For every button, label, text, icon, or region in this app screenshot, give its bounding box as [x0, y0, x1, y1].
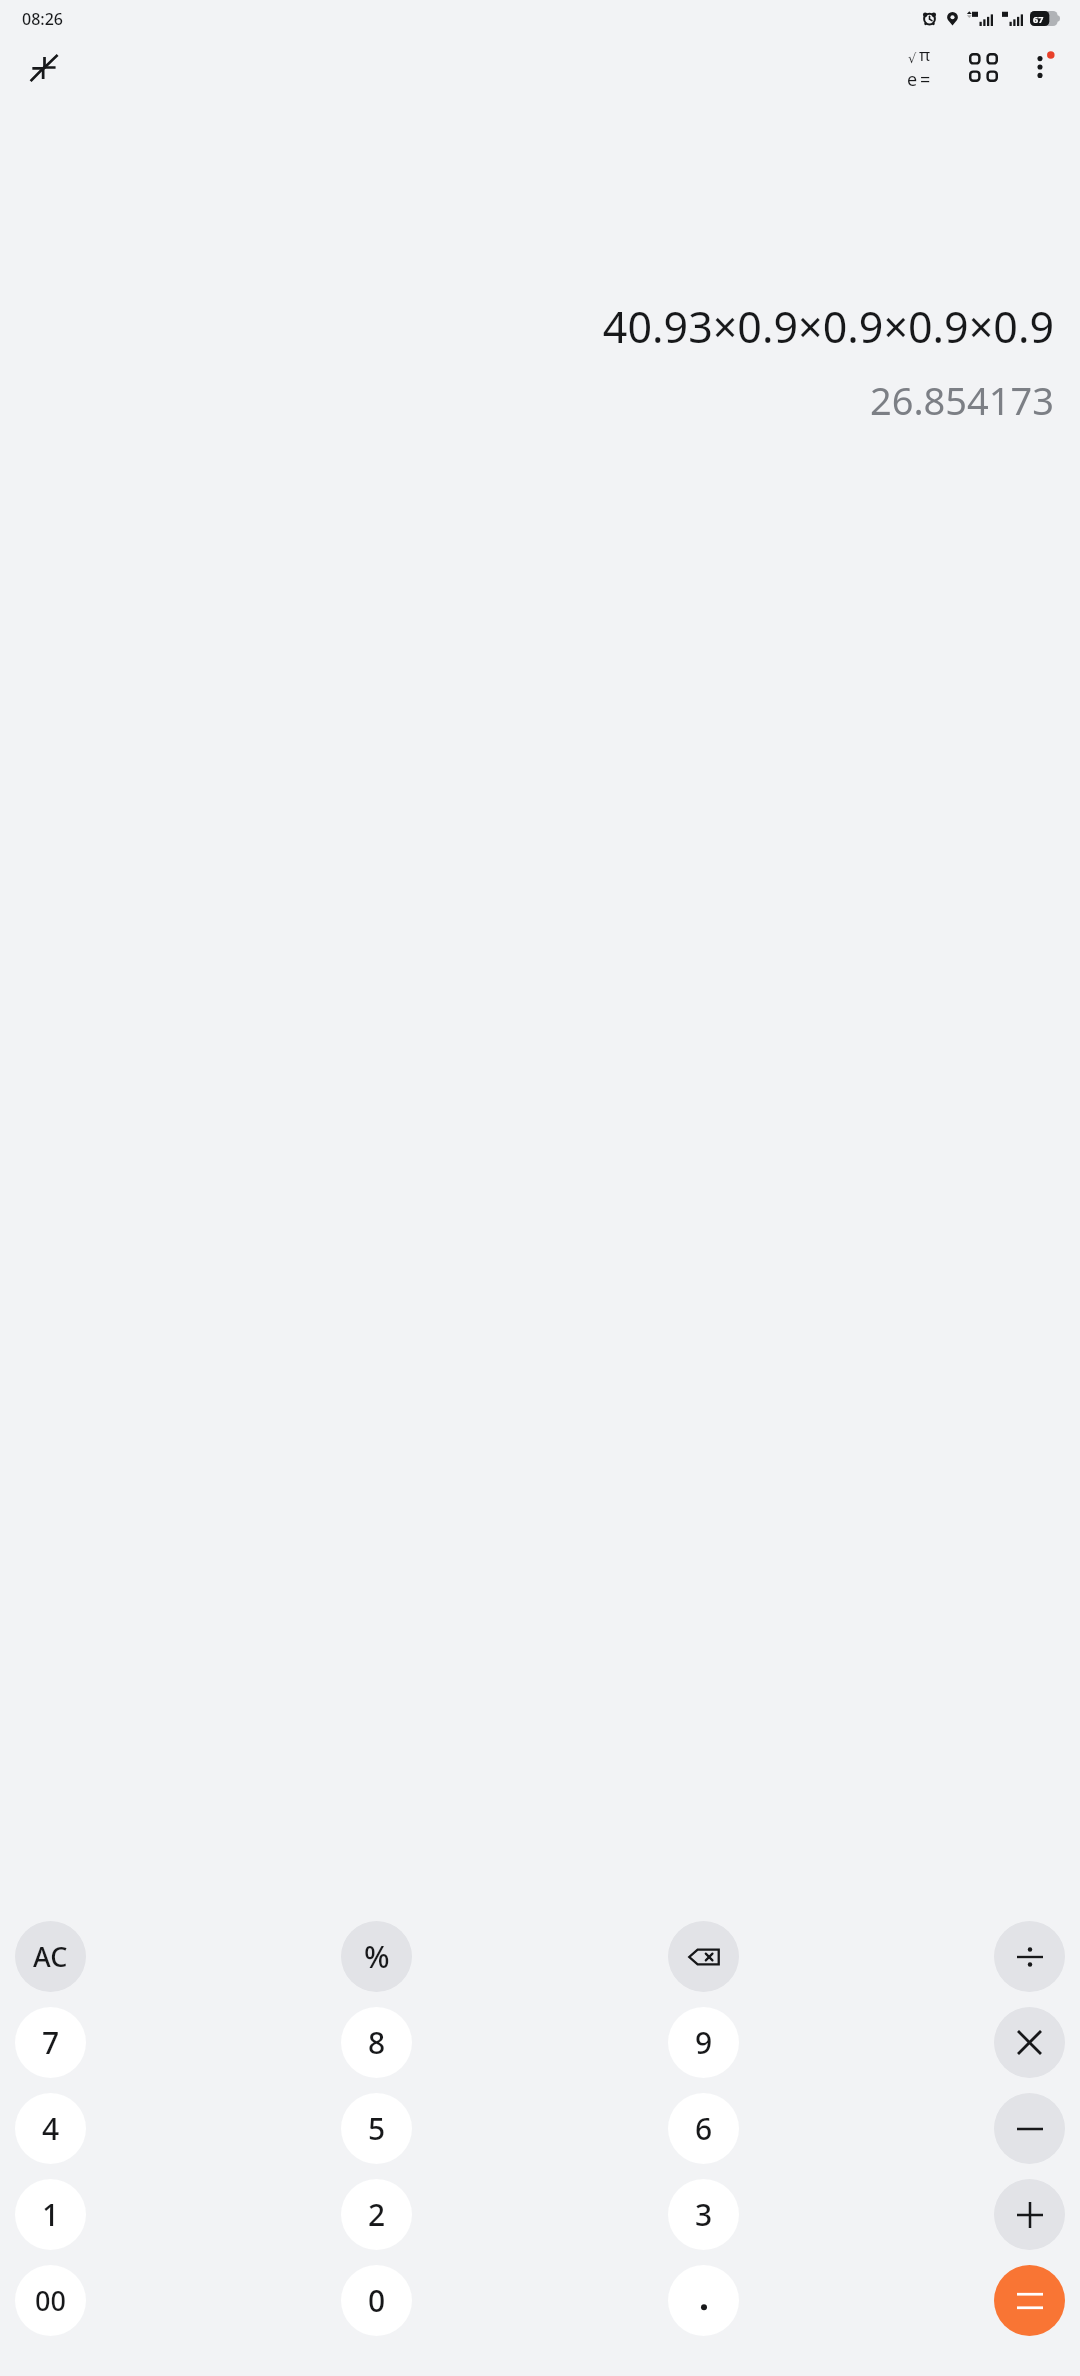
staticText: 26.854173	[869, 374, 1054, 426]
staticText: 7	[42, 2022, 60, 2063]
button[interactable]: More options	[1014, 38, 1072, 96]
button[interactable]: Scientific mode	[890, 38, 948, 96]
staticText: =	[920, 67, 931, 92]
button[interactable]: Add	[994, 2179, 1065, 2250]
button[interactable]: AC	[15, 1921, 86, 1992]
button[interactable]: 1	[15, 2179, 86, 2250]
staticText: AC	[33, 1938, 68, 1975]
button[interactable]: 5	[341, 2093, 412, 2164]
button[interactable]: 7	[15, 2007, 86, 2078]
staticText: 00	[35, 2282, 66, 2319]
staticText: 9	[695, 2022, 713, 2063]
staticText: 6	[695, 2108, 713, 2149]
staticText: e	[907, 67, 918, 92]
staticText: 2	[368, 2194, 386, 2235]
staticText: 08:26	[22, 8, 63, 30]
staticText: 40.93×0.9×0.9×0.9×0.9	[602, 297, 1054, 356]
button[interactable]: 8	[341, 2007, 412, 2078]
button[interactable]: 4	[15, 2093, 86, 2164]
staticText: π	[919, 43, 931, 66]
button[interactable]: Multiply	[994, 2007, 1065, 2078]
staticText: 3	[695, 2194, 713, 2235]
button[interactable]: Collapse	[18, 41, 70, 93]
button[interactable]: Divide	[994, 1921, 1065, 1992]
staticText: 5	[368, 2108, 386, 2149]
button[interactable]: 6	[668, 2093, 739, 2164]
button[interactable]: Delete	[668, 1921, 739, 1992]
button[interactable]: Equals	[994, 2265, 1065, 2336]
button[interactable]: 0	[341, 2265, 412, 2336]
staticText: %	[364, 1936, 390, 1977]
staticText: 8	[368, 2022, 386, 2063]
button[interactable]: 9	[668, 2007, 739, 2078]
button[interactable]: 2	[341, 2179, 412, 2250]
button[interactable]: 3	[668, 2179, 739, 2250]
staticText: 1	[42, 2194, 60, 2235]
staticText: 67	[1033, 13, 1044, 25]
button[interactable]: Unit converter	[954, 38, 1012, 96]
staticText: 4	[42, 2108, 60, 2149]
staticText: 0	[368, 2280, 386, 2321]
button[interactable]: Subtract	[994, 2093, 1065, 2164]
button[interactable]: %	[341, 1921, 412, 1992]
button[interactable]: Decimal point	[668, 2265, 739, 2336]
staticText: √	[908, 51, 917, 66]
button[interactable]: 00	[15, 2265, 86, 2336]
